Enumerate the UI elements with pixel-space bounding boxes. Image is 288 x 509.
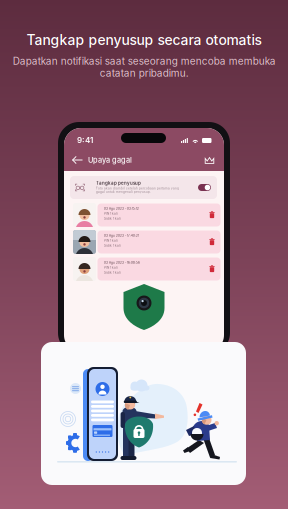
staticText: Foto akan diambil setelah percobaan pert…: [96, 187, 179, 194]
staticText: Dapatkan notifikasi saat seseorang menco…: [12, 55, 275, 79]
button[interactable]: 03 Agu 2023 - 17:40:21: [69, 230, 224, 254]
staticText: 03 Agu 2023 - 17:40:21: [104, 234, 139, 237]
button[interactable]: 03 Agu 2023 - 16:08:56: [69, 257, 224, 281]
staticText: 03 Agu 2023 - 16:08:56: [104, 261, 140, 264]
button[interactable]: Back: [71, 153, 85, 167]
staticText: Tangkap penyusup: [96, 180, 141, 186]
button[interactable]: 03 Agu 2023 - 03:15:12: [69, 203, 224, 227]
staticText: PIN 1 kali: [104, 239, 118, 242]
staticText: PIN 1 kali: [104, 266, 118, 269]
staticText: Sidik 1 kali: [104, 271, 121, 274]
button[interactable]: Premium: [204, 155, 215, 166]
staticText: PIN 1 kali: [104, 212, 118, 215]
staticText: Tangkap penyusup secara otomatis: [26, 32, 261, 48]
staticText: Sidik 1 kali: [104, 217, 121, 220]
button[interactable]: Tangkap penyusup: [70, 176, 217, 199]
staticText: Sidik 1 kali: [104, 244, 121, 247]
staticText: 9:41: [77, 135, 93, 145]
staticText: 03 Agu 2023 - 03:15:12: [104, 207, 139, 210]
staticText: Upaya gagal: [88, 156, 132, 164]
